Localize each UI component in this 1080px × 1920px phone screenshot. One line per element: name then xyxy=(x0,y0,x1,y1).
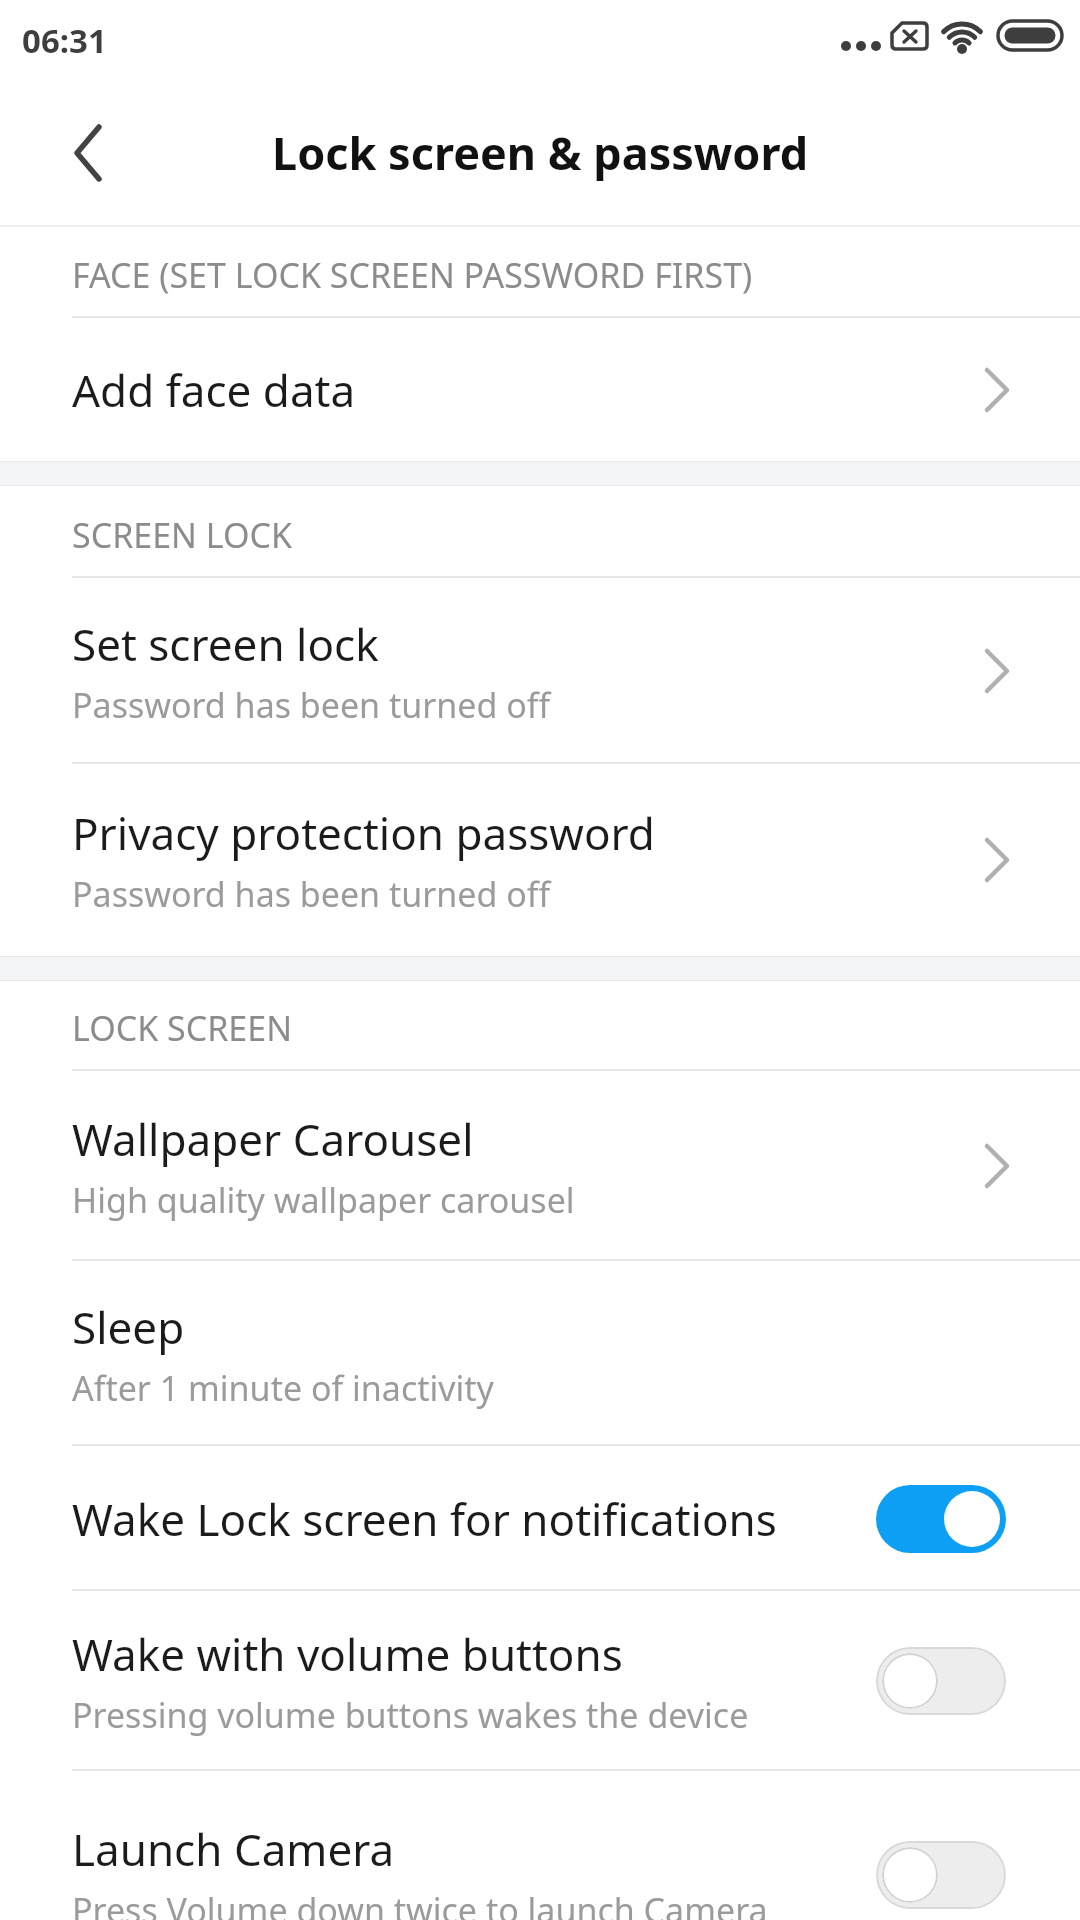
staticText: SCREEN LOCK xyxy=(72,512,293,558)
staticText: Wake Lock screen for notifications xyxy=(72,1489,777,1549)
staticText: Sleep xyxy=(72,1297,185,1357)
staticText: Set screen lock xyxy=(72,614,379,674)
button[interactable]: Add face data xyxy=(0,318,1080,461)
staticText: LOCK SCREEN xyxy=(72,1005,293,1051)
button[interactable] xyxy=(876,1485,1006,1553)
button[interactable]: Wallpaper Carousel xyxy=(0,1071,1080,1261)
staticText: Lock screen & password xyxy=(272,122,809,183)
button[interactable]: Privacy protection password xyxy=(0,764,1080,956)
staticText: FACE (SET LOCK SCREEN PASSWORD FIRST) xyxy=(72,252,753,298)
button[interactable]: Wake Lock screen for notifications xyxy=(0,1446,1080,1591)
staticText: Privacy protection password xyxy=(72,803,655,863)
button[interactable] xyxy=(876,1647,1006,1715)
staticText: High quality wallpaper carousel xyxy=(72,1177,575,1223)
staticText: Launch Camera xyxy=(72,1819,395,1879)
staticText: Password has been turned off xyxy=(72,871,551,917)
button[interactable]: Launch Camera xyxy=(0,1771,1080,1920)
button[interactable] xyxy=(876,1841,1006,1909)
staticText: After 1 minute of inactivity xyxy=(72,1365,494,1411)
button[interactable]: Sleep xyxy=(0,1261,1080,1446)
staticText: Add face data xyxy=(72,360,356,420)
staticText: Wake with volume buttons xyxy=(72,1624,623,1684)
staticText: Press Volume down twice to launch Camera xyxy=(72,1887,768,1920)
staticText: Pressing volume buttons wakes the device xyxy=(72,1692,749,1738)
button[interactable] xyxy=(58,123,118,183)
button[interactable]: Set screen lock xyxy=(0,578,1080,764)
staticText: Password has been turned off xyxy=(72,682,551,728)
staticText: Wallpaper Carousel xyxy=(72,1109,474,1169)
button[interactable]: Wake with volume buttons xyxy=(0,1591,1080,1771)
staticText: 06:31 xyxy=(22,18,107,63)
